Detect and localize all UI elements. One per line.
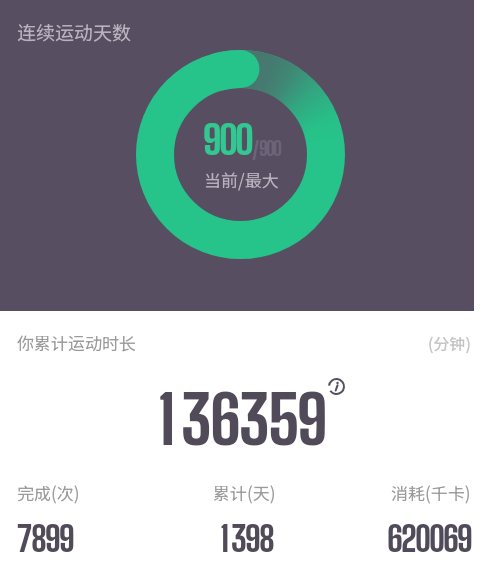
staticText: 连续运动天数 [17,18,132,46]
staticText: 8 [259,519,273,560]
staticText: 累计(天) [213,480,276,505]
staticText: 消耗(千卡) [391,480,471,505]
staticText: 0 [429,519,443,560]
staticText: 3 [231,519,245,560]
staticText: 2 [401,519,415,560]
button[interactable]: 消耗(千卡) [320,480,471,546]
staticText: 9 [457,519,471,560]
button[interactable]: Information [326,376,346,396]
staticText: 7 [17,519,31,560]
staticText: 9 [45,519,59,560]
button[interactable]: 累计(天) [169,480,320,546]
staticText: 0 [266,137,273,160]
staticText: 6 [210,380,239,459]
staticText: 0 [219,116,235,164]
staticText: 9 [59,519,73,560]
staticText: 9 [203,116,219,164]
staticText: (分钟) [428,331,471,354]
staticText: 你累计运动时长 [17,330,136,355]
button[interactable]: 完成(次) [17,480,169,546]
staticText: 当前/最大 [204,167,279,192]
staticText: 8 [31,519,45,560]
staticText: 9 [297,380,326,459]
staticText: 3 [239,380,268,459]
staticText: 6 [387,519,401,560]
staticText: 9 [245,519,259,560]
staticText: 1 [220,519,229,560]
staticText: 1 [158,380,175,459]
staticText: 5 [268,380,297,459]
staticText: 3 [181,380,210,459]
staticText: 0 [273,137,280,160]
staticText: 0 [415,519,429,560]
staticText: 6 [443,519,457,560]
staticText: 9 [259,137,266,160]
staticText: 完成(次) [17,480,80,505]
staticText: 0 [235,116,251,164]
staticText: / [252,137,259,160]
